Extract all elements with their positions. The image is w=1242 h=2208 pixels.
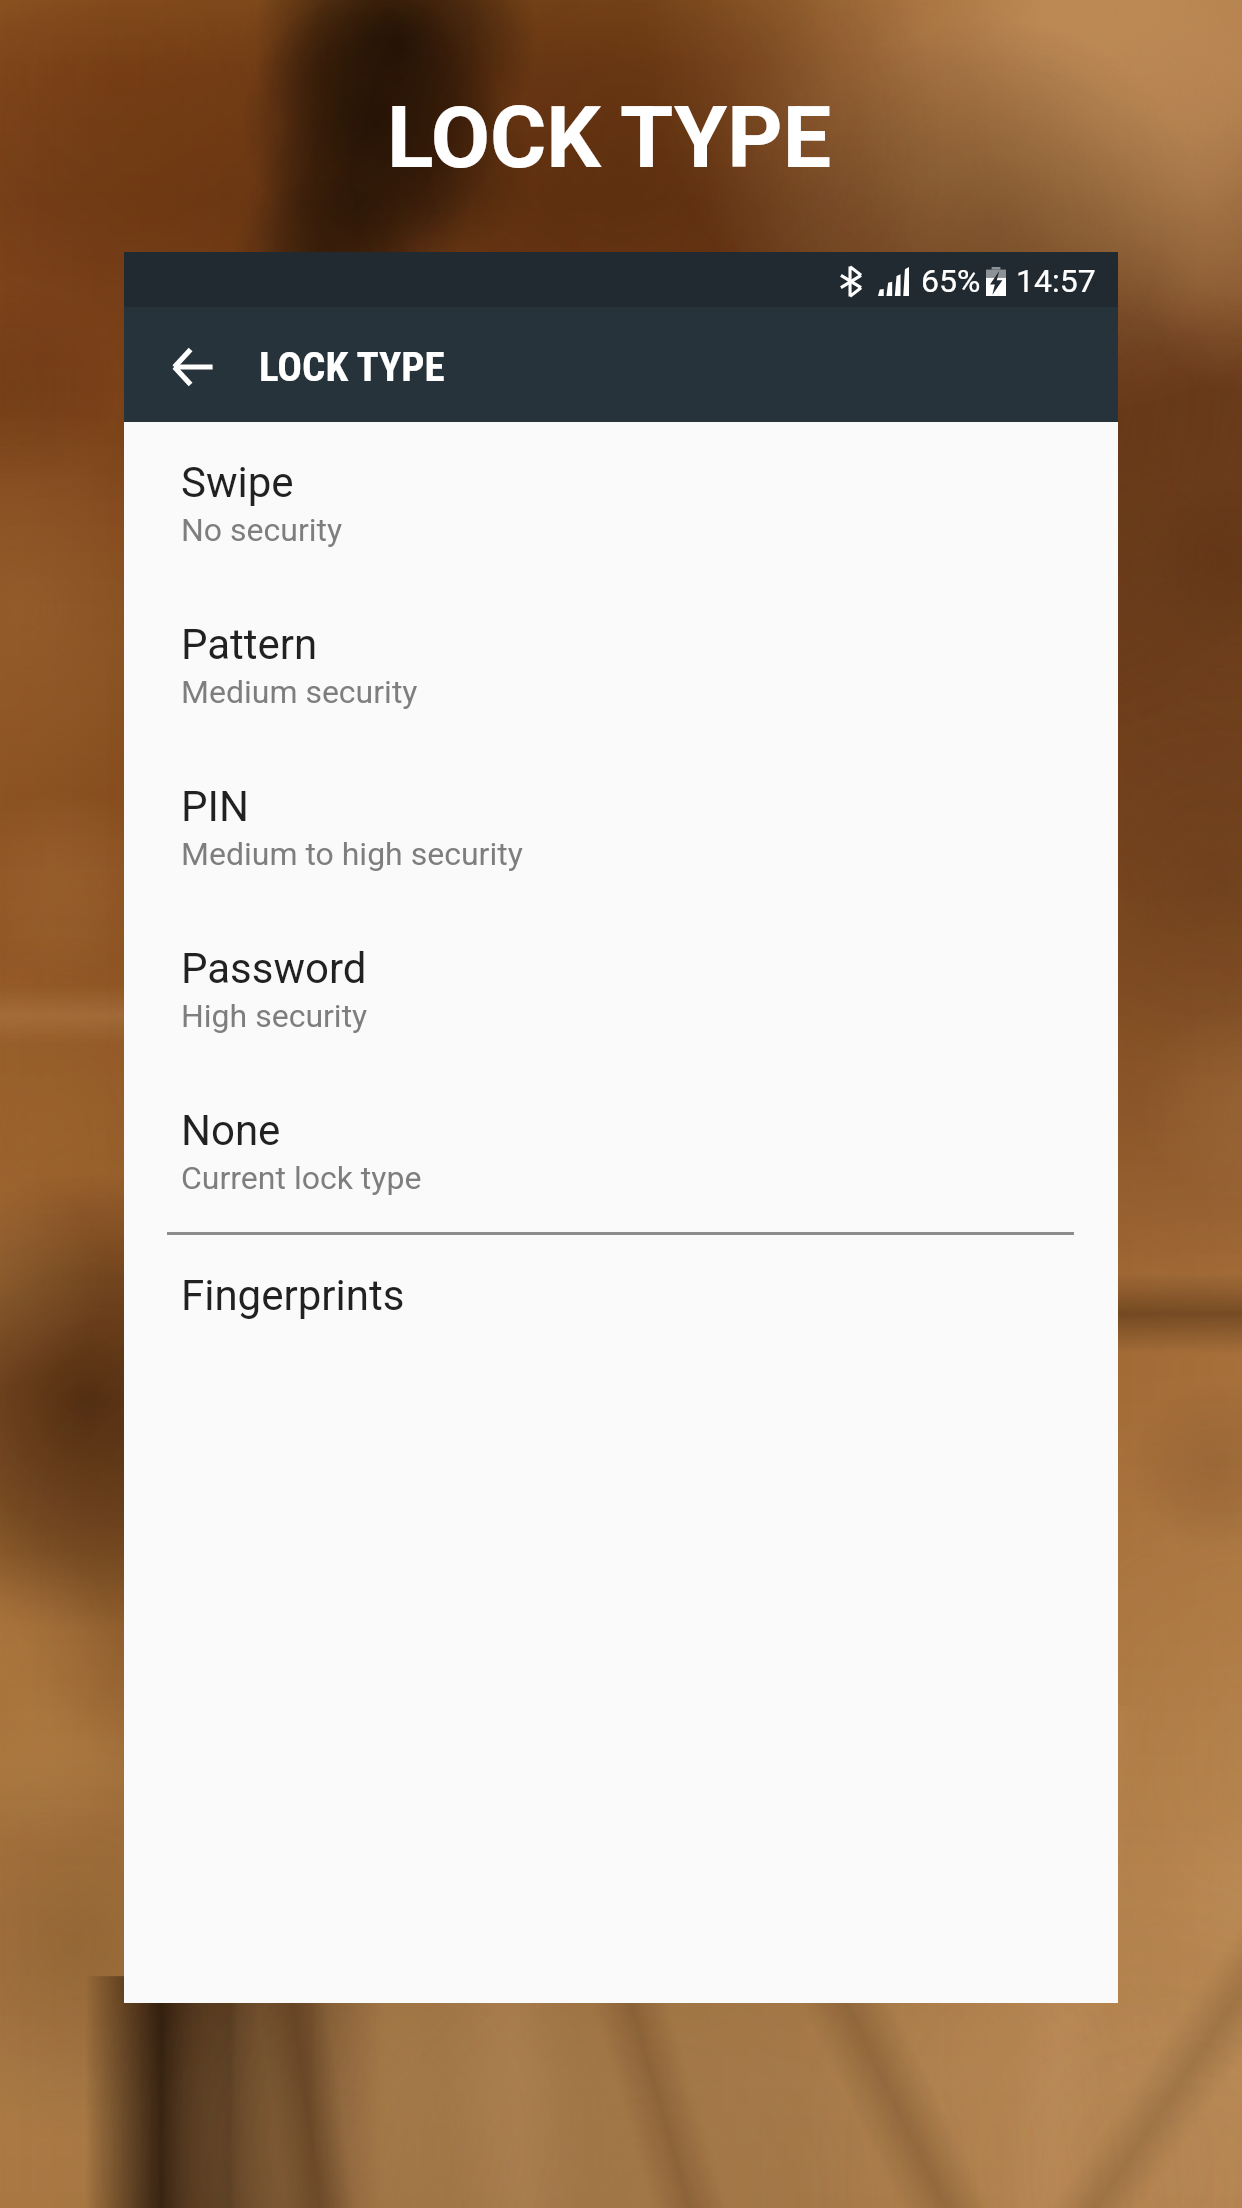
button[interactable]: Pattern <box>124 584 1118 746</box>
staticText: None <box>181 1106 281 1155</box>
staticText: LOCK TYPE <box>0 87 1230 188</box>
staticText: High security <box>181 997 368 1035</box>
button[interactable]: Password <box>124 908 1118 1070</box>
staticText: Swipe <box>181 458 294 507</box>
staticText: PIN <box>181 782 249 831</box>
staticText: LOCK TYPE <box>259 343 445 391</box>
button[interactable]: None <box>124 1070 1118 1232</box>
staticText: Medium to high security <box>181 835 523 873</box>
button[interactable]: PIN <box>124 746 1118 908</box>
staticText: No security <box>181 511 343 549</box>
staticText: Fingerprints <box>181 1271 405 1320</box>
staticText: Current lock type <box>181 1159 422 1197</box>
staticText: Pattern <box>181 620 318 669</box>
staticText: Password <box>181 944 367 993</box>
staticText: 14:57 <box>1016 262 1096 300</box>
staticText: 65% <box>921 262 981 300</box>
staticText: Medium security <box>181 673 418 711</box>
button[interactable]: Back <box>145 319 241 415</box>
button[interactable]: Swipe <box>124 422 1118 584</box>
button[interactable]: Fingerprints <box>124 1235 1118 1385</box>
